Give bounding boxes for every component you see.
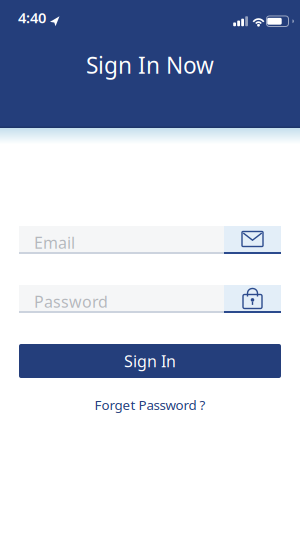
button[interactable]: Sign In [19,344,281,378]
button[interactable]: Forget Password ? [86,393,213,417]
button[interactable]: Password [19,285,281,313]
staticText: Password [34,291,108,312]
staticText: Email [34,232,75,253]
staticText: Sign In [124,350,176,372]
staticText: Forget Password ? [94,396,205,414]
button[interactable]: Email [19,226,281,254]
staticText: 4:40 [18,8,46,27]
staticText: Sign In Now [86,50,214,80]
